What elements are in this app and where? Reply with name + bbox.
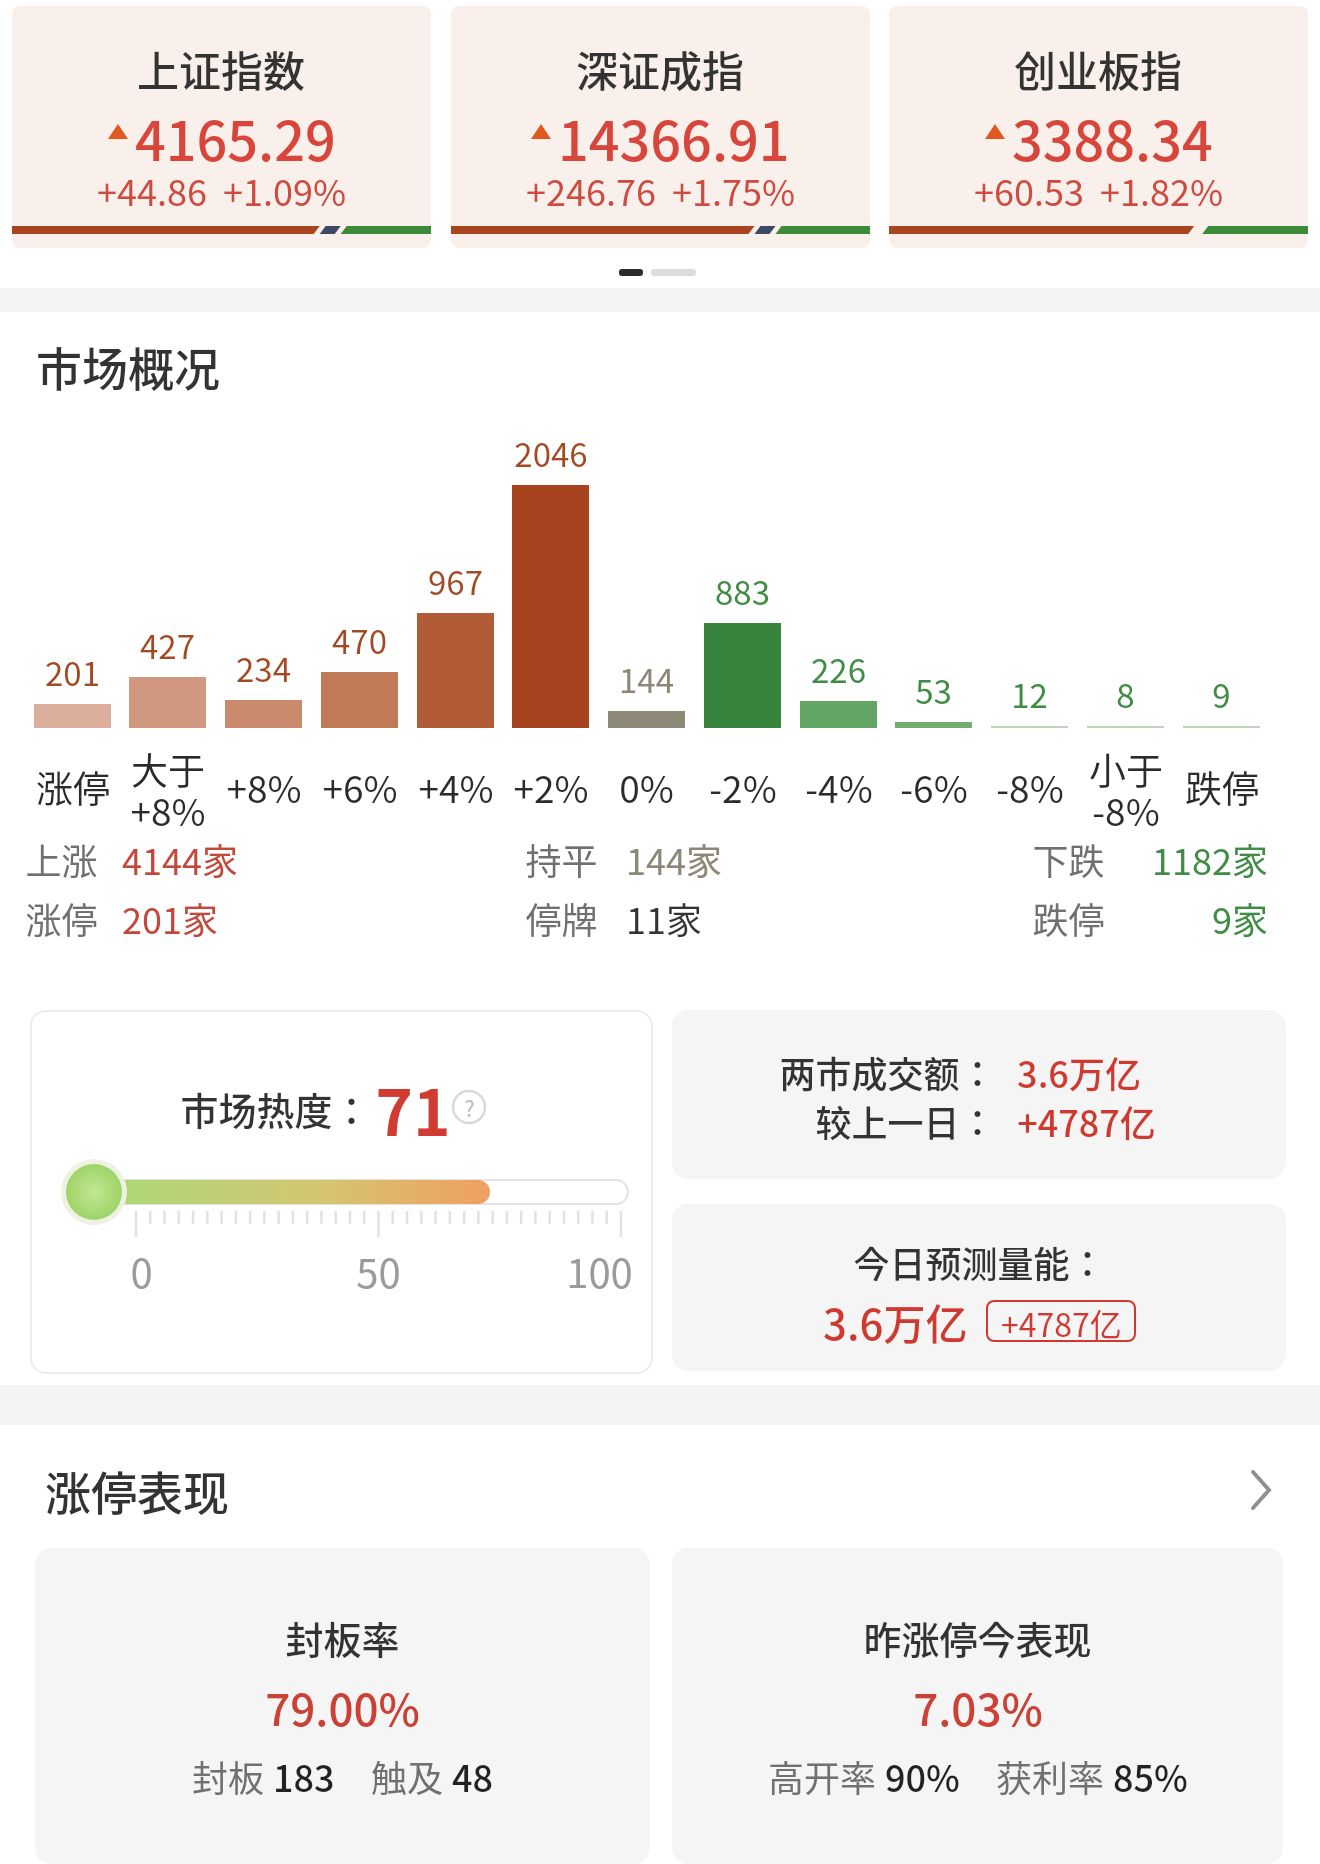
button[interactable]: [0, 1455, 1320, 1525]
staticText: 427: [140, 621, 195, 669]
staticText: 创业板指: [1014, 38, 1183, 96]
button[interactable]: 深证成指: [451, 6, 870, 248]
staticText: 涨停: [25, 892, 98, 944]
staticText: 11家: [626, 892, 702, 944]
button[interactable]: [672, 1204, 1286, 1371]
staticText: -6%: [900, 760, 968, 814]
staticText: 71: [375, 1062, 451, 1155]
staticText: 上证指数: [137, 38, 306, 96]
staticText: 8: [1116, 670, 1135, 718]
staticText: 涨停: [36, 760, 110, 814]
staticText: 4144家: [122, 833, 238, 885]
staticText: 触及: [371, 1750, 452, 1802]
staticText: 上涨: [25, 833, 98, 885]
staticText: 201家: [122, 892, 218, 944]
staticText: +8%: [226, 760, 302, 814]
staticText: +4787亿: [1001, 1300, 1122, 1342]
staticText: 大于 +8%: [130, 742, 206, 837]
staticText: 跌停: [1032, 892, 1105, 944]
button[interactable]: 上证指数: [12, 6, 431, 248]
staticText: 226: [811, 645, 866, 693]
staticText: +4%: [418, 760, 494, 814]
staticText: 昨涨停今表现: [863, 1610, 1092, 1665]
staticText: +2%: [513, 760, 589, 814]
staticText: 100: [566, 1242, 633, 1300]
staticText: +6%: [322, 760, 398, 814]
staticText: 深证成指: [576, 38, 745, 96]
staticText: 183: [273, 1750, 335, 1802]
staticText: 今日预测量能：: [853, 1236, 1106, 1288]
button[interactable]: 创业板指: [889, 6, 1308, 248]
staticText: +60.53 +1.82%: [974, 164, 1224, 216]
staticText: 持平: [525, 833, 598, 885]
button[interactable]: [35, 1548, 650, 1864]
staticText: 7.03%: [913, 1675, 1043, 1739]
staticText: 79.00%: [265, 1675, 420, 1739]
staticText: 9: [1212, 670, 1231, 718]
staticText: 2046: [514, 429, 588, 477]
staticText: 0: [130, 1242, 153, 1300]
staticText: 9家: [1212, 892, 1268, 944]
staticText: 144: [619, 655, 674, 703]
staticText: 市场热度：: [180, 1081, 371, 1136]
staticText: 3.6万亿: [1017, 1046, 1141, 1098]
staticText: 1182家: [1152, 833, 1268, 885]
staticText: 90%: [885, 1750, 960, 1802]
staticText: 53: [915, 666, 952, 714]
staticText: 967: [428, 557, 483, 605]
staticText: 3388.34: [1012, 98, 1213, 164]
staticText: +246.76 +1.75%: [526, 164, 796, 216]
staticText: 停牌: [525, 892, 598, 944]
button[interactable]: [672, 1010, 1286, 1179]
staticText: +44.86 +1.09%: [97, 164, 347, 216]
staticText: 234: [236, 644, 291, 692]
staticText: 小于 -8%: [1089, 742, 1163, 837]
staticText: 50: [356, 1242, 401, 1300]
staticText: 封板率: [285, 1610, 400, 1665]
staticText: 85%: [1113, 1750, 1188, 1802]
staticText: 获利率: [996, 1750, 1113, 1802]
button[interactable]: [672, 1548, 1283, 1864]
staticText: 48: [452, 1750, 494, 1802]
staticText: 14366.91: [558, 98, 790, 164]
staticText: 下跌: [1032, 833, 1105, 885]
staticText: 封板: [192, 1750, 273, 1802]
staticText: 涨停表现: [45, 1457, 229, 1524]
staticText: 市场概况: [36, 333, 220, 400]
staticText: 两市成交额：: [779, 1046, 996, 1098]
staticText: 144家: [626, 833, 722, 885]
staticText: 470: [332, 616, 387, 664]
button[interactable]: 市场热度：: [30, 1010, 653, 1374]
staticText: ?: [464, 1091, 475, 1123]
staticText: 4165.29: [135, 98, 336, 164]
staticText: 跌停: [1185, 760, 1259, 814]
staticText: 较上一日：: [815, 1095, 996, 1147]
staticText: -8%: [996, 760, 1064, 814]
staticText: 0%: [619, 760, 674, 814]
staticText: 3.6万亿: [823, 1291, 968, 1351]
staticText: +4787亿: [1017, 1095, 1156, 1147]
staticText: 883: [715, 567, 770, 615]
staticText: 高开率: [768, 1750, 885, 1802]
staticText: -2%: [709, 760, 777, 814]
staticText: 12: [1011, 670, 1048, 718]
staticText: 201: [45, 648, 100, 696]
staticText: -4%: [805, 760, 873, 814]
